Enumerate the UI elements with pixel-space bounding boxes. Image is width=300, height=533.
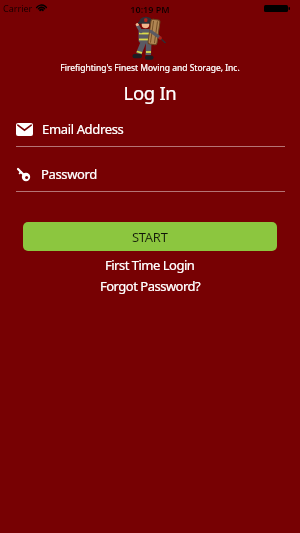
staticText: START [132,228,168,246]
button[interactable]: Forgot Password? [100,277,201,295]
staticText: Email Address [42,120,124,138]
staticText: Firefighting's Finest Moving and Storage… [0,62,300,74]
button[interactable]: Password [0,163,300,185]
staticText: 10:19 PM [0,3,300,15]
button[interactable]: First Time Login [105,256,195,274]
staticText: Password [41,165,97,183]
staticText: Carrier [3,2,33,14]
button[interactable]: START [23,222,277,251]
staticText: Log In [0,80,300,105]
button[interactable]: Email Address [0,118,300,140]
